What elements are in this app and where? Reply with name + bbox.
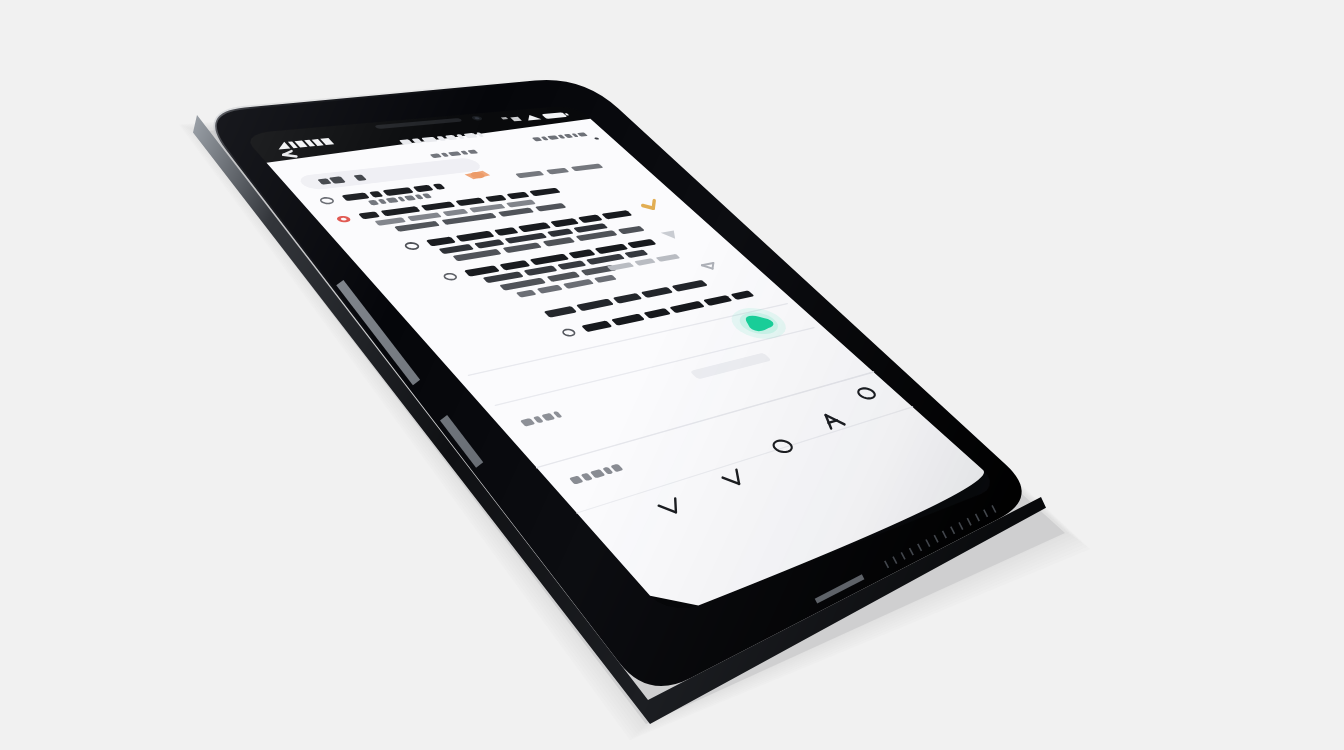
button[interactable]: Profile (924, 466, 988, 520)
button[interactable]: Back (230, 120, 270, 154)
button[interactable]: Explore (810, 520, 880, 578)
button[interactable]: Labels (868, 498, 934, 554)
button[interactable]: Home (660, 560, 730, 620)
button[interactable]: Tasks (740, 540, 810, 600)
button[interactable]: Search (268, 145, 468, 179)
button[interactable]: More options (500, 122, 590, 152)
